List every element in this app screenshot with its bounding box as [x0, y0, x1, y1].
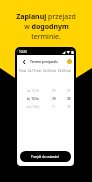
button[interactable]: Profil — [67, 59, 72, 64]
button[interactable]: Przejdź do ustawień — [20, 151, 71, 162]
staticText: Za 60 min — [58, 69, 72, 73]
staticText: Przejdź do ustawień — [31, 155, 60, 159]
button[interactable]: Za 60 min — [58, 69, 72, 73]
button[interactable]: Teraz — [19, 69, 27, 73]
staticText: 10 — [52, 97, 56, 101]
staticText: wt, 12 lis — [27, 89, 39, 93]
button[interactable]: Wstecz — [20, 58, 27, 65]
staticText: Teraz — [19, 69, 27, 73]
staticText: 25 — [67, 89, 71, 93]
button[interactable]: Za 15 min — [28, 69, 42, 73]
staticText: śr, 13 lis — [27, 97, 39, 101]
staticText: Termin przejazdu — [30, 59, 58, 63]
staticText: 35 — [67, 105, 71, 109]
staticText: Zaplanuj przejazd — [16, 12, 76, 22]
staticText: Za 30 min — [43, 69, 57, 73]
staticText: Za 15 min — [28, 69, 42, 73]
staticText: czw, 14 lis — [26, 105, 40, 109]
button[interactable]: Za 30 min — [43, 69, 57, 73]
staticText: 10:30 — [19, 50, 27, 54]
staticText: w dogodnym — [24, 22, 69, 32]
staticText: terminie. — [31, 32, 61, 42]
staticText: 09 — [52, 89, 56, 93]
staticText: 11 — [52, 105, 56, 109]
staticText: 30 — [67, 97, 71, 101]
